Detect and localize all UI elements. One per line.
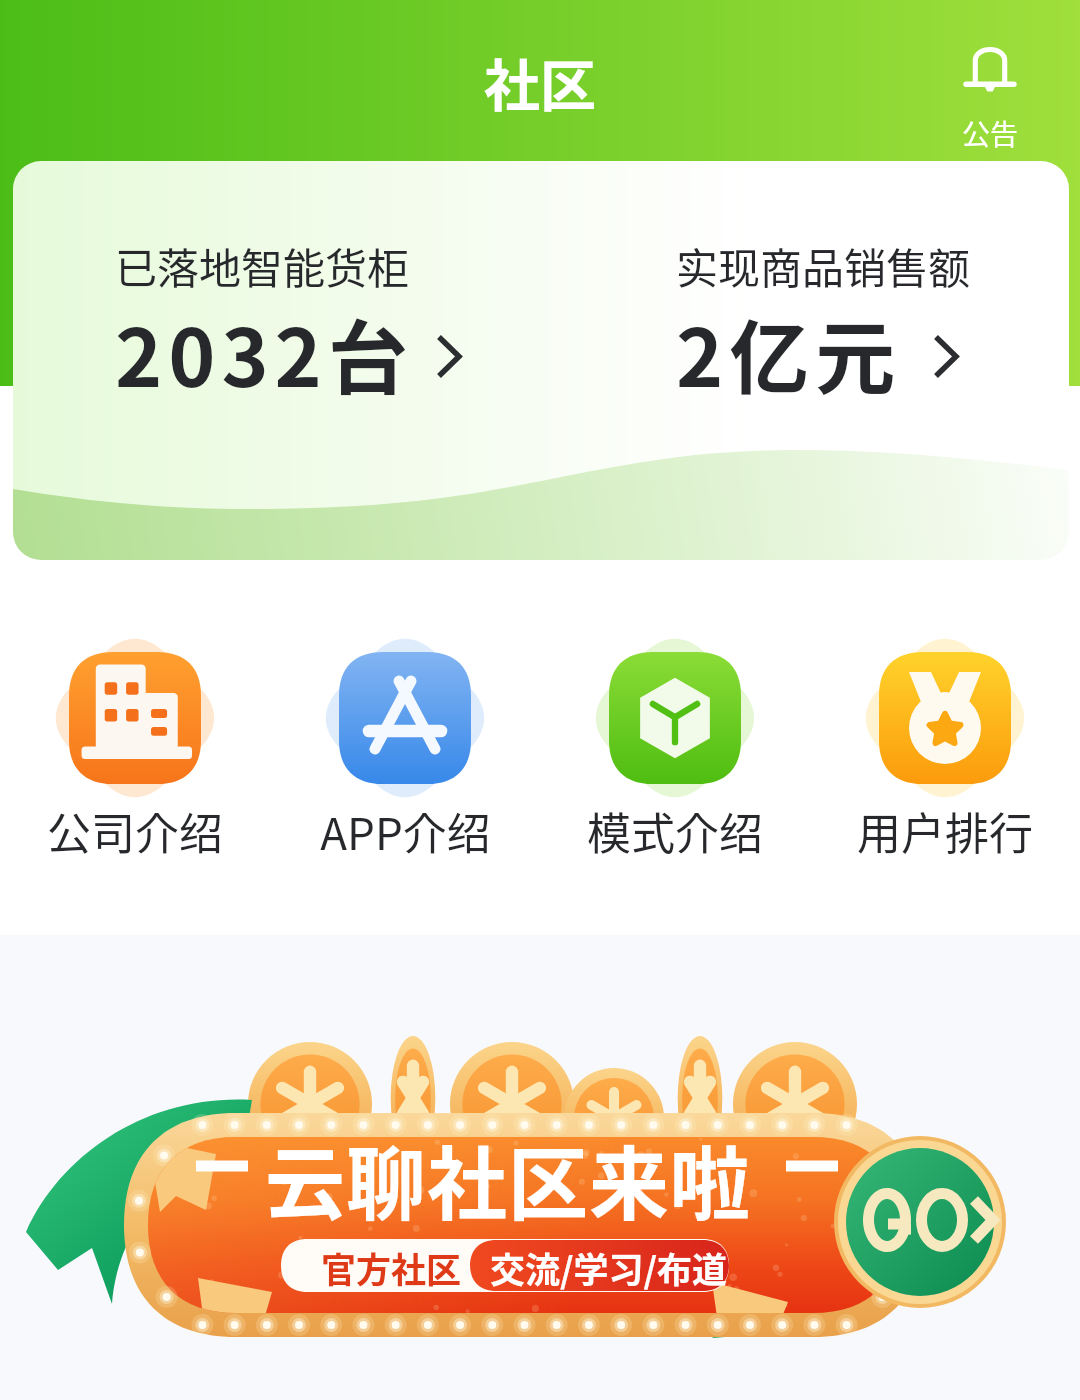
button[interactable]: 公告 (930, 42, 1050, 154)
button[interactable]: 已落地智能货柜 (91, 221, 511, 401)
staticText: 实现商品销售额 (676, 235, 971, 296)
staticText: APP介绍 (320, 799, 491, 863)
button[interactable]: 模式介绍 (540, 642, 810, 863)
staticText: 已落地智能货柜 (115, 235, 410, 296)
button[interactable]: 云聊社区来啦 (0, 1020, 1080, 1360)
staticText: 2亿元 (676, 294, 902, 410)
staticText: 公告 (962, 113, 1019, 154)
staticText: 模式介绍 (587, 799, 763, 863)
staticText: 社区 (484, 41, 596, 122)
button[interactable]: 用户排行 (810, 642, 1080, 863)
button[interactable]: APP介绍 (270, 642, 540, 863)
staticText: 云聊社区来啦 (265, 1120, 751, 1236)
staticText: 交流/学习/布道 (490, 1242, 728, 1293)
staticText: 公司介绍 (47, 799, 223, 863)
staticText: 2032台 (115, 294, 414, 410)
button[interactable]: 实现商品销售额 (652, 221, 1069, 401)
button[interactable]: 公司介绍 (0, 642, 270, 863)
staticText: 用户排行 (857, 799, 1033, 863)
staticText: 官方社区 (321, 1242, 462, 1293)
